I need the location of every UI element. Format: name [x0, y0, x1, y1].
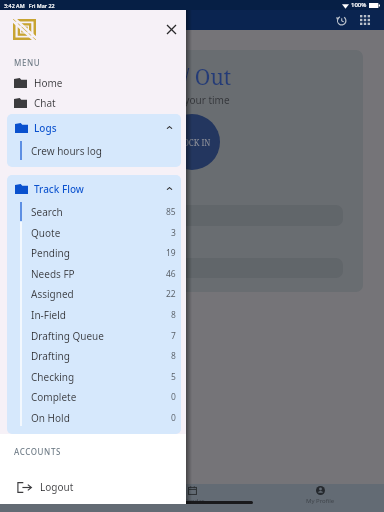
staticText: 3: [171, 227, 176, 239]
button[interactable]: Calendar: [128, 484, 256, 512]
staticText: Clock In / Out: [97, 63, 232, 92]
staticText: On Hold: [31, 411, 70, 425]
staticText: Checking: [31, 370, 75, 384]
staticText: 8: [171, 309, 176, 321]
staticText: 3:42 AM Fri Mar 22: [4, 2, 55, 9]
staticText: 85: [166, 206, 176, 218]
staticText: Complete: [31, 390, 77, 404]
button[interactable]: Assigned: [7, 283, 181, 304]
staticText: 0: [171, 412, 176, 424]
staticText: Crew hours log: [31, 144, 102, 158]
staticText: 19: [166, 247, 176, 259]
button[interactable]: Logout: [0, 476, 186, 498]
staticText: 8: [171, 350, 176, 362]
button[interactable]: Track Flow: [7, 178, 181, 199]
staticText: 100%: [351, 1, 367, 9]
staticText: My Profile: [306, 497, 335, 505]
button[interactable]: CLOCK IN: [164, 114, 220, 170]
button[interactable]: In-Field: [7, 304, 181, 325]
staticText: Quote: [31, 226, 61, 240]
staticText: Pending: [31, 246, 70, 260]
staticText: Logout: [40, 480, 74, 494]
staticText: Chat: [34, 96, 56, 110]
button[interactable]: Logs: [7, 117, 181, 138]
staticText: Track your time: [157, 93, 230, 107]
staticText: In-Field: [31, 308, 66, 322]
staticText: Assigned: [31, 287, 74, 301]
button[interactable]: My Profile: [256, 484, 384, 512]
staticText: 0: [171, 391, 176, 403]
button[interactable]: On Hold: [7, 407, 181, 428]
staticText: ACCOUNTS: [14, 446, 61, 457]
staticText: 22: [166, 288, 176, 300]
staticText: Jobs: [58, 497, 70, 505]
button[interactable]: Quote: [7, 222, 181, 243]
button[interactable]: Needs FP: [7, 263, 181, 284]
button[interactable]: Drafting Queue: [7, 325, 181, 346]
staticText: Home: [34, 76, 63, 90]
button[interactable]: Close menu: [160, 18, 183, 41]
staticText: Drafting: [31, 349, 70, 363]
button[interactable]: Search: [7, 201, 181, 222]
staticText: Calendar: [179, 497, 205, 505]
button[interactable]: Crew hours log: [7, 140, 181, 161]
staticText: CLOCK IN: [173, 137, 211, 148]
button[interactable]: Jobs: [0, 484, 128, 512]
button[interactable]: Complete: [7, 386, 181, 407]
button[interactable]: Apps: [355, 10, 375, 30]
staticText: Logs: [34, 121, 57, 135]
button[interactable]: Checking: [7, 366, 181, 387]
button[interactable]: Chat: [0, 93, 186, 113]
button[interactable]: History: [331, 10, 351, 30]
button[interactable]: Home: [0, 73, 186, 93]
staticText: Drafting Queue: [31, 329, 104, 343]
button[interactable]: Drafting: [7, 345, 181, 366]
staticText: Search: [31, 205, 63, 219]
button[interactable]: Pending: [7, 242, 181, 263]
staticText: Track Flow: [34, 182, 84, 196]
staticText: 5: [171, 371, 176, 383]
staticText: 7: [171, 330, 176, 342]
staticText: Needs FP: [31, 267, 75, 281]
staticText: 46: [166, 268, 176, 280]
staticText: MENU: [14, 57, 41, 68]
